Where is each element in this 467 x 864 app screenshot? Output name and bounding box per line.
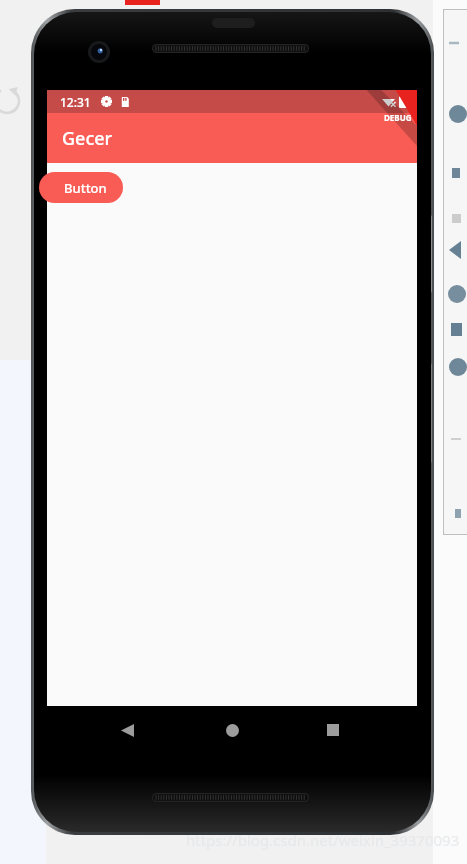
other: Storage bbox=[120, 97, 130, 107]
staticText: DEBUG bbox=[384, 112, 412, 123]
staticText: Gecer bbox=[62, 126, 113, 151]
staticText: Button bbox=[64, 179, 107, 197]
button[interactable]: Back bbox=[115, 718, 139, 742]
other: Settings bbox=[101, 96, 112, 107]
staticText: 12:31 bbox=[60, 94, 91, 110]
button[interactable]: Button bbox=[39, 172, 123, 203]
button[interactable]: Recent apps bbox=[321, 718, 345, 742]
staticText: https://blog.csdn.net/weixin_39370093 bbox=[186, 830, 460, 850]
button[interactable]: Home bbox=[220, 718, 244, 742]
